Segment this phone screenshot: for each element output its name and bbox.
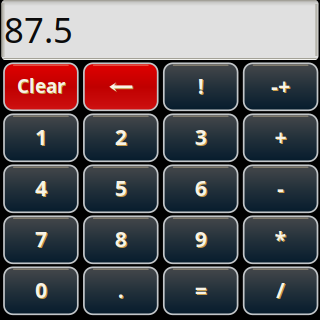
staticText: . (119, 277, 125, 305)
staticText: * (276, 226, 288, 254)
staticText: 2 (116, 124, 128, 152)
button[interactable]: Decimal point (84, 267, 158, 314)
staticText: 4 (35, 174, 47, 202)
staticText: 1 (36, 124, 48, 152)
staticText: 5 (115, 174, 127, 202)
staticText: 6 (195, 174, 207, 202)
button[interactable]: 8 (84, 216, 158, 263)
staticText: 3 (196, 124, 208, 152)
staticText: Clear (17, 73, 65, 98)
staticText: / (276, 276, 285, 304)
staticText: -+ (271, 72, 290, 100)
staticText: 4 (36, 175, 48, 203)
staticText: + (276, 124, 288, 152)
staticText: - (278, 175, 285, 203)
staticText: 7 (36, 226, 48, 254)
button[interactable]: 1 (4, 114, 78, 161)
button[interactable]: 9 (164, 216, 238, 263)
staticText: . (118, 276, 124, 304)
button[interactable]: Factorial (164, 63, 238, 110)
button[interactable]: 3 (164, 114, 238, 161)
staticText: - (277, 174, 284, 202)
staticText: ! (199, 73, 205, 101)
button[interactable]: Toggle sign (244, 63, 317, 110)
staticText: = (196, 277, 208, 305)
button[interactable]: Backspace (84, 63, 158, 110)
button[interactable]: 7 (4, 216, 78, 263)
staticText: 3 (195, 123, 207, 151)
staticText: 5 (116, 175, 128, 203)
staticText: Clear (18, 74, 66, 99)
staticText: 2 (115, 123, 127, 151)
staticText: 8 (115, 225, 127, 253)
staticText: -+ (272, 73, 291, 101)
staticText: ! (198, 72, 204, 100)
staticText: 1 (35, 123, 47, 151)
button[interactable]: Minus (244, 165, 317, 212)
button[interactable]: 0 (4, 267, 78, 314)
button[interactable]: Plus (244, 114, 317, 161)
button[interactable]: Equals (164, 267, 238, 314)
staticText: 0 (35, 276, 47, 304)
staticText: 9 (196, 226, 208, 254)
button[interactable]: Multiply (244, 216, 317, 263)
staticText: / (277, 277, 286, 305)
staticText: 7 (35, 225, 47, 253)
button[interactable]: 2 (84, 114, 158, 161)
staticText: = (195, 276, 207, 304)
staticText: 6 (196, 175, 208, 203)
staticText: 0 (36, 277, 48, 305)
staticText: 8 (116, 226, 128, 254)
button[interactable]: Divide (244, 267, 317, 314)
staticText: 87.5 (4, 6, 73, 52)
button[interactable]: 5 (84, 165, 158, 212)
staticText: * (275, 225, 287, 253)
staticText: + (275, 123, 287, 151)
button[interactable]: 6 (164, 165, 238, 212)
button[interactable]: 4 (4, 165, 78, 212)
staticText: 9 (195, 225, 207, 253)
button[interactable]: Clear (4, 63, 78, 110)
